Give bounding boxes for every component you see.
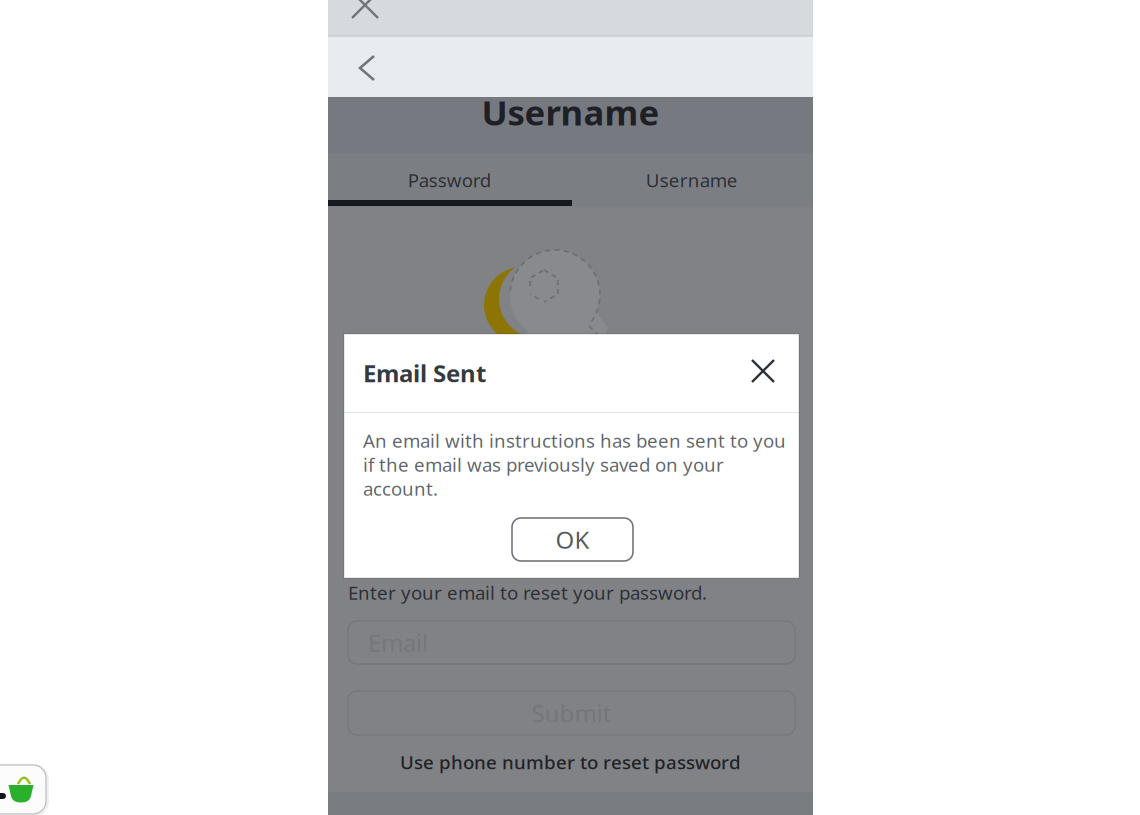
staticText: if the email was previously saved on you…: [363, 452, 724, 477]
button[interactable]: Password: [328, 157, 570, 203]
staticText: Password: [408, 168, 491, 192]
staticText: Username: [646, 168, 738, 192]
staticText: Email: [368, 627, 428, 658]
button[interactable]: Close: [341, 0, 389, 29]
staticText: An email with instructions has been sent…: [363, 428, 786, 453]
button[interactable]: Close: [739, 347, 787, 395]
button[interactable]: Use phone number to reset password: [328, 747, 813, 777]
button[interactable]: Shopping bag: [0, 765, 50, 815]
staticText: account.: [363, 476, 438, 501]
staticText: Email Sent: [363, 357, 486, 389]
button[interactable]: OK: [512, 518, 633, 561]
staticText: Submit: [531, 697, 611, 729]
staticText: OK: [555, 524, 589, 555]
staticText: Enter your email to reset your password.: [348, 580, 707, 605]
button[interactable]: Back: [343, 44, 391, 92]
button[interactable]: Username: [570, 157, 813, 203]
staticText: Use phone number to reset password: [400, 750, 741, 774]
staticText: Username: [481, 89, 659, 135]
